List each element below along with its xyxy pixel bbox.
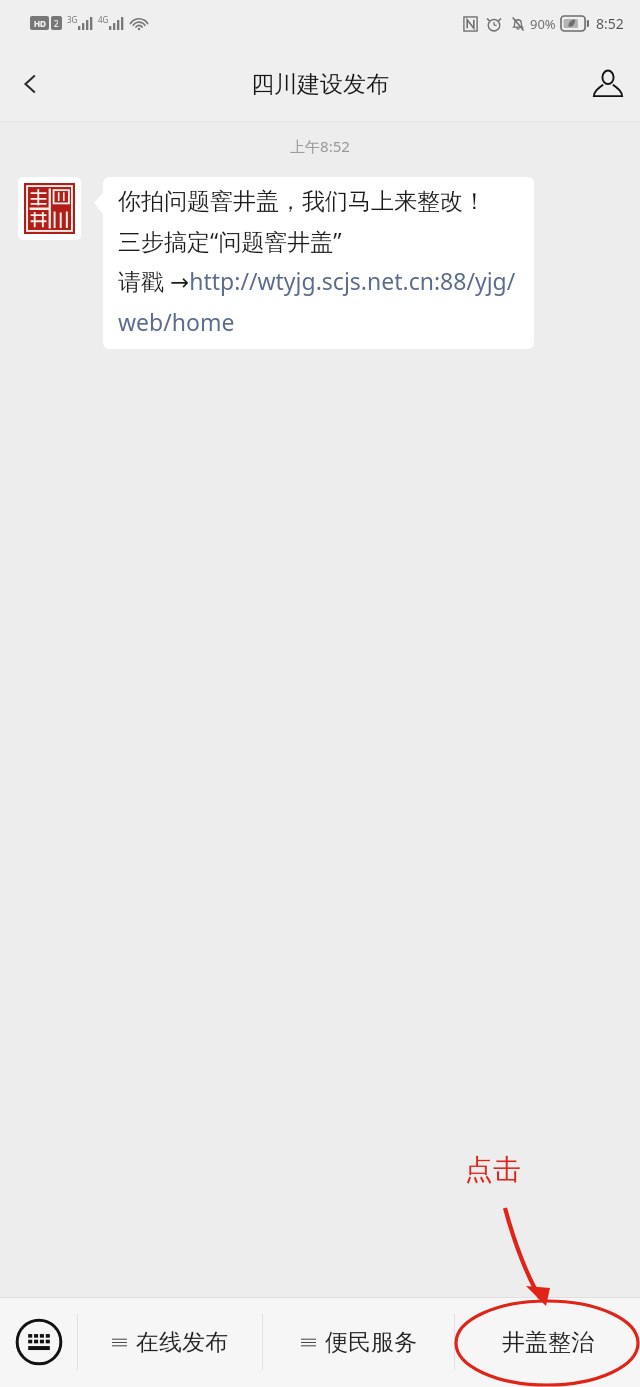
staticText: HD: [34, 18, 46, 29]
button[interactable]: Keyboard: [0, 1297, 77, 1387]
staticText: 点击: [465, 1152, 521, 1187]
staticText: 4G: [98, 14, 109, 25]
staticText: 四川建设发布: [251, 70, 389, 99]
staticText: 2: [54, 18, 59, 29]
staticText: 井盖整治: [502, 1328, 594, 1357]
staticText: 90%: [530, 15, 556, 33]
button[interactable]: Back: [0, 46, 62, 122]
staticText: 8:52: [596, 14, 624, 33]
button[interactable]: 便民服务: [263, 1297, 454, 1387]
staticText: 便民服务: [325, 1328, 417, 1357]
button[interactable]: 井盖整治: [455, 1297, 640, 1387]
staticText: 3G: [67, 14, 78, 25]
staticText: 在线发布: [136, 1328, 228, 1357]
button[interactable]: 你拍问题窨井盖，我们马上来整改！ 三步搞定“问题窨井盖” 请戳 →http://…: [103, 177, 534, 349]
staticText: 你拍问题窨井盖，我们马上来整改！ 三步搞定“问题窨井盖” 请戳 →http://…: [118, 187, 526, 337]
staticText: 上午8:52: [0, 136, 640, 156]
button[interactable]: 在线发布: [78, 1297, 262, 1387]
button[interactable]: Avatar: [18, 177, 81, 240]
button[interactable]: Profile: [576, 46, 640, 122]
